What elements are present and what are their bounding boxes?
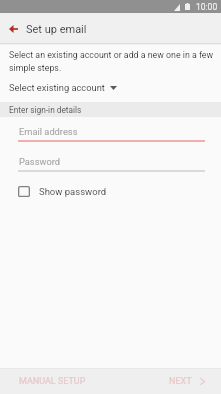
button[interactable]: Password: [18, 152, 205, 172]
button[interactable]: NEXT: [163, 371, 211, 392]
staticText: 10:00: [196, 2, 218, 12]
staticText: Enter sign-in details: [9, 105, 82, 115]
staticText: MANUAL SETUP: [19, 376, 86, 387]
staticText: Show password: [39, 186, 107, 197]
button[interactable]: Show password: [0, 183, 107, 199]
button[interactable]: MANUAL SETUP: [10, 371, 95, 392]
staticText: Set up email: [26, 23, 87, 36]
staticText: Select an existing account or add a new …: [9, 50, 217, 73]
button[interactable]: Back: [3, 19, 23, 39]
staticText: Password: [19, 156, 61, 167]
staticText: NEXT: [169, 376, 192, 387]
staticText: Email address: [19, 126, 78, 137]
button[interactable]: Email address: [18, 122, 205, 142]
button[interactable]: Select existing account: [0, 78, 221, 97]
staticText: Select existing account: [9, 82, 105, 93]
